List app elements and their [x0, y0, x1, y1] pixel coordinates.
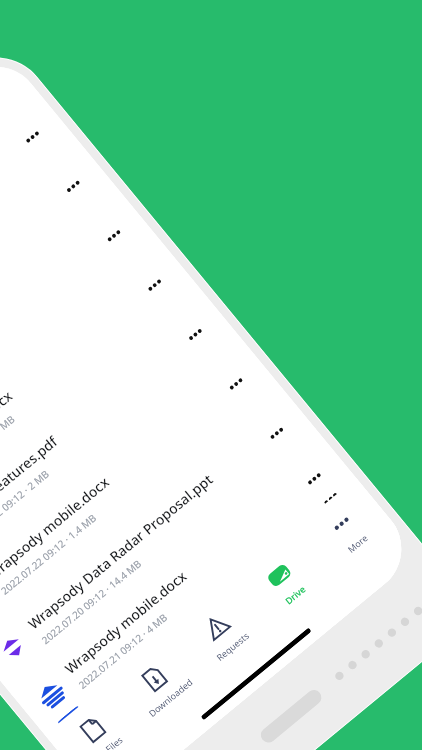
button[interactable]: Meeting notes.docx: [0, 239, 200, 546]
button[interactable]: More options: [11, 116, 54, 158]
button[interactable]: Product features.pdf: [0, 289, 241, 595]
staticText: More: [345, 531, 370, 555]
button[interactable]: Company profile.pdf: [0, 91, 78, 398]
staticText: 2022.07.21 09:12 · 4 MB: [75, 610, 171, 692]
button[interactable]: Wrapsody mobile.docx: [0, 338, 282, 645]
button[interactable]: Design guide.docx: [0, 141, 119, 447]
button[interactable]: Drive: [231, 529, 341, 638]
staticText: 2022.07.20 09:12 · 14.4 MB: [38, 556, 145, 647]
button[interactable]: Requests: [169, 581, 278, 689]
button[interactable]: More options: [134, 264, 176, 306]
staticText: Wrapsody mobile.docx: [0, 472, 113, 584]
button[interactable]: More options: [293, 458, 335, 500]
button[interactable]: More options: [93, 215, 135, 257]
staticText: 2022.07.22 09:12 · 2 MB: [0, 466, 52, 548]
staticText: My Files: [91, 733, 125, 750]
staticText: Wrapsody Data Radar Proposal.ppt: [24, 470, 216, 633]
staticText: 2022.07.22 09:12 · 1.4 MB: [0, 510, 99, 598]
staticText: Requests: [214, 629, 251, 663]
staticText: Product features.pdf: [0, 432, 61, 534]
button[interactable]: Roadmap 2022.pptx: [0, 190, 160, 496]
staticText: 2022.07.23 09:12 · 1.1 MB: [0, 412, 18, 499]
staticText: Wrapsody mobile.docx: [61, 566, 191, 678]
staticText: Downloaded: [146, 675, 195, 719]
button[interactable]: My Files: [45, 684, 153, 750]
button[interactable]: Downloaded: [106, 632, 216, 741]
button[interactable]: More options: [174, 313, 216, 356]
button[interactable]: Wrapsody Data Radar Proposal.ppt: [0, 388, 323, 694]
staticText: Meeting notes.docx: [0, 386, 16, 485]
button[interactable]: More options: [52, 165, 94, 207]
button[interactable]: More: [294, 478, 403, 586]
button[interactable]: More options: [215, 363, 257, 405]
button[interactable]: More options: [256, 412, 298, 454]
staticText: Drive: [282, 583, 308, 606]
button[interactable]: Wrapsody mobile.docx: [11, 437, 356, 735]
